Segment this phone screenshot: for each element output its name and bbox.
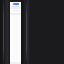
button[interactable] bbox=[10, 9, 21, 11]
button[interactable]: Previous bbox=[0, 0, 10, 64]
button[interactable] bbox=[10, 5, 21, 7]
button[interactable]: Primary action bbox=[13, 3, 19, 5]
button[interactable]: Next bbox=[21, 0, 30, 64]
